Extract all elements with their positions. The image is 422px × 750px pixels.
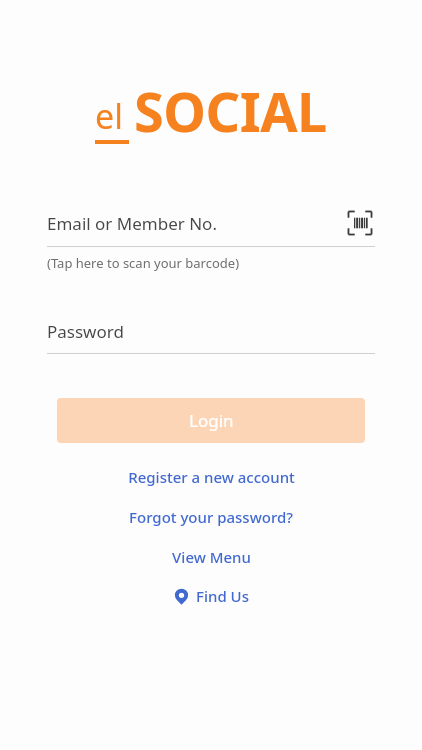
button[interactable]: Find Us [165, 584, 257, 608]
staticText: Password [47, 320, 124, 343]
button[interactable]: Forgot your password? [119, 504, 303, 530]
button[interactable]: Register a new account [118, 464, 305, 490]
button[interactable]: View Menu [162, 544, 261, 570]
button[interactable]: Login [57, 398, 365, 443]
staticText: SOCIAL [134, 74, 327, 148]
staticText: Find Us [196, 586, 249, 606]
staticText: el [95, 93, 123, 139]
button[interactable]: (Tap here to scan your barcode) [47, 254, 240, 272]
button[interactable]: Scan barcode [345, 208, 375, 238]
staticText: Email or Member No. [47, 212, 345, 235]
staticText: Login [189, 409, 234, 432]
